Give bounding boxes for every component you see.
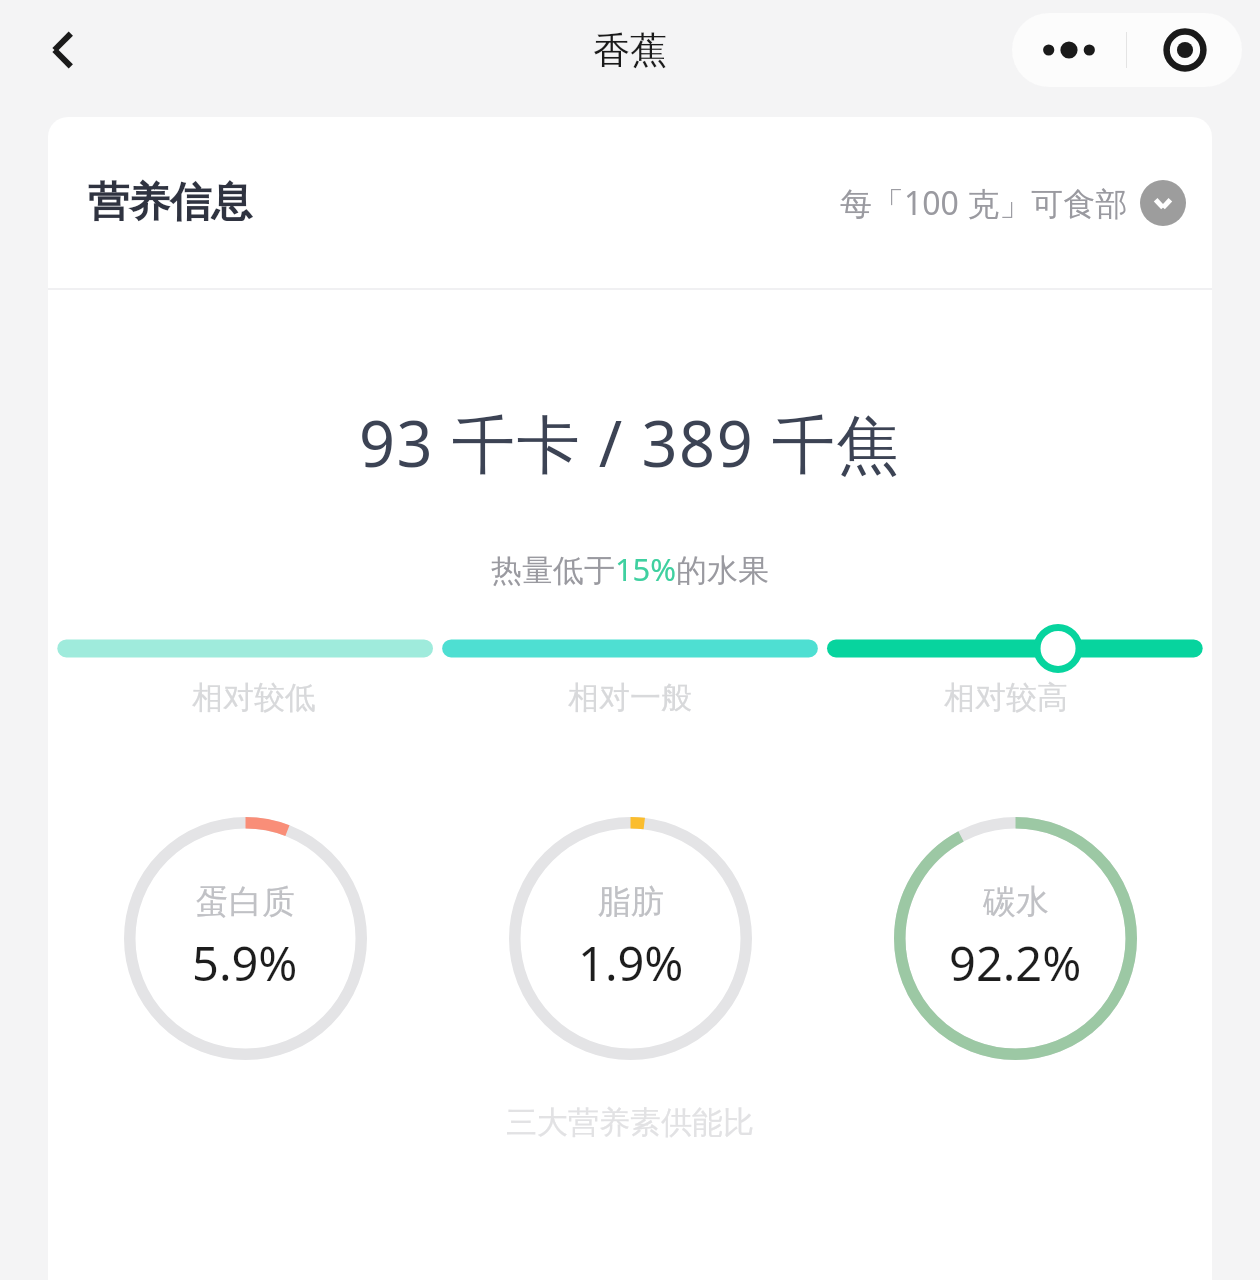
staticText: 脂肪 — [598, 881, 664, 923]
staticText: 相对较低 — [66, 678, 442, 717]
button[interactable]: 蛋白质 — [52, 813, 438, 1063]
staticText: 5.9% — [192, 931, 298, 995]
staticText: 相对一般 — [442, 678, 818, 717]
staticText: 1.9% — [578, 931, 684, 995]
staticText: 营养信息 — [88, 177, 252, 229]
button[interactable]: 脂肪 — [438, 813, 823, 1063]
button[interactable]: More options — [1012, 13, 1126, 87]
staticText: 三大营养素供能比 — [48, 1103, 1212, 1142]
button[interactable]: Back — [22, 10, 102, 90]
staticText: 92.2% — [949, 931, 1082, 995]
staticText: 碳水 — [983, 881, 1049, 923]
button[interactable]: Close mini program — [1127, 13, 1242, 87]
button[interactable]: 碳水 — [823, 813, 1208, 1063]
button[interactable]: 每「100 克」可食部 — [840, 170, 1186, 236]
staticText: 热量低于15%的水果 — [48, 548, 1212, 590]
staticText: 香蕉 — [593, 27, 667, 74]
staticText: 相对较高 — [818, 678, 1194, 717]
staticText: 蛋白质 — [196, 881, 295, 923]
staticText: 93 千卡 / 389 千焦 — [48, 400, 1212, 486]
staticText: 每「100 克」可食部 — [840, 181, 1128, 225]
